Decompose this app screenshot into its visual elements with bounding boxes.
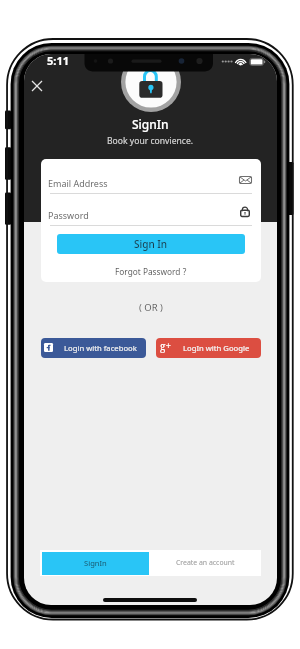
button[interactable]: Create an account — [149, 550, 261, 576]
staticText: Password — [48, 209, 89, 221]
staticText: Login with facebook — [64, 343, 137, 353]
staticText: SignIn — [84, 558, 107, 568]
staticText: 5:11 — [47, 54, 69, 68]
staticText: Book your convience. — [107, 135, 194, 147]
staticText: Create an account — [176, 558, 235, 567]
button[interactable]: Sign In — [57, 234, 245, 254]
staticText: LogIn with Google — [183, 343, 250, 353]
staticText: Sign In — [134, 237, 168, 251]
button[interactable]: g+ — [156, 338, 261, 358]
staticText: Email Address — [48, 177, 108, 189]
button[interactable]: Login with facebook — [41, 338, 146, 358]
button[interactable]: SignIn — [42, 552, 149, 575]
staticText: SignIn — [132, 116, 169, 132]
staticText: g+ — [160, 339, 171, 353]
button[interactable]: Forgot Password ? — [112, 265, 190, 278]
button[interactable]: Close — [25, 74, 49, 98]
staticText: ( OR ) — [139, 301, 163, 314]
